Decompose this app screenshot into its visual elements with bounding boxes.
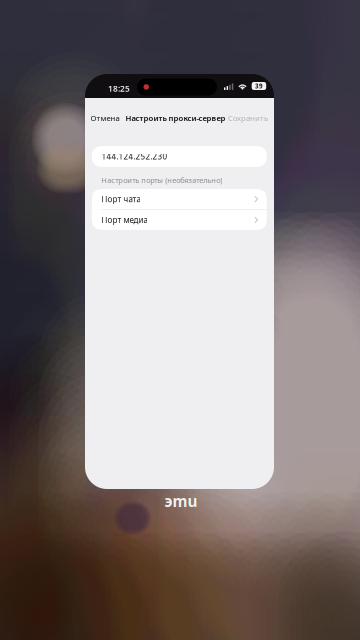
staticText: 18:25: [108, 83, 130, 94]
staticText: 144.124.252.230: [101, 151, 167, 162]
staticText: Отмена: [90, 113, 119, 123]
staticText: Порт чата: [101, 194, 140, 205]
staticText: Порт медиа: [101, 214, 147, 225]
button[interactable]: Сохранить: [230, 109, 268, 127]
staticText: эmu: [164, 491, 197, 511]
button[interactable]: Порт чата: [92, 189, 267, 209]
button[interactable]: Порт медиа: [92, 210, 267, 230]
staticText: Настроить порты (необязательно): [101, 175, 222, 185]
button[interactable]: Отмена: [90, 109, 123, 127]
button[interactable]: 144.124.252.230: [92, 146, 267, 167]
staticText: Сохранить: [228, 113, 268, 123]
staticText: 39: [255, 82, 263, 90]
staticText: Настроить прокси-сервер: [125, 113, 225, 123]
